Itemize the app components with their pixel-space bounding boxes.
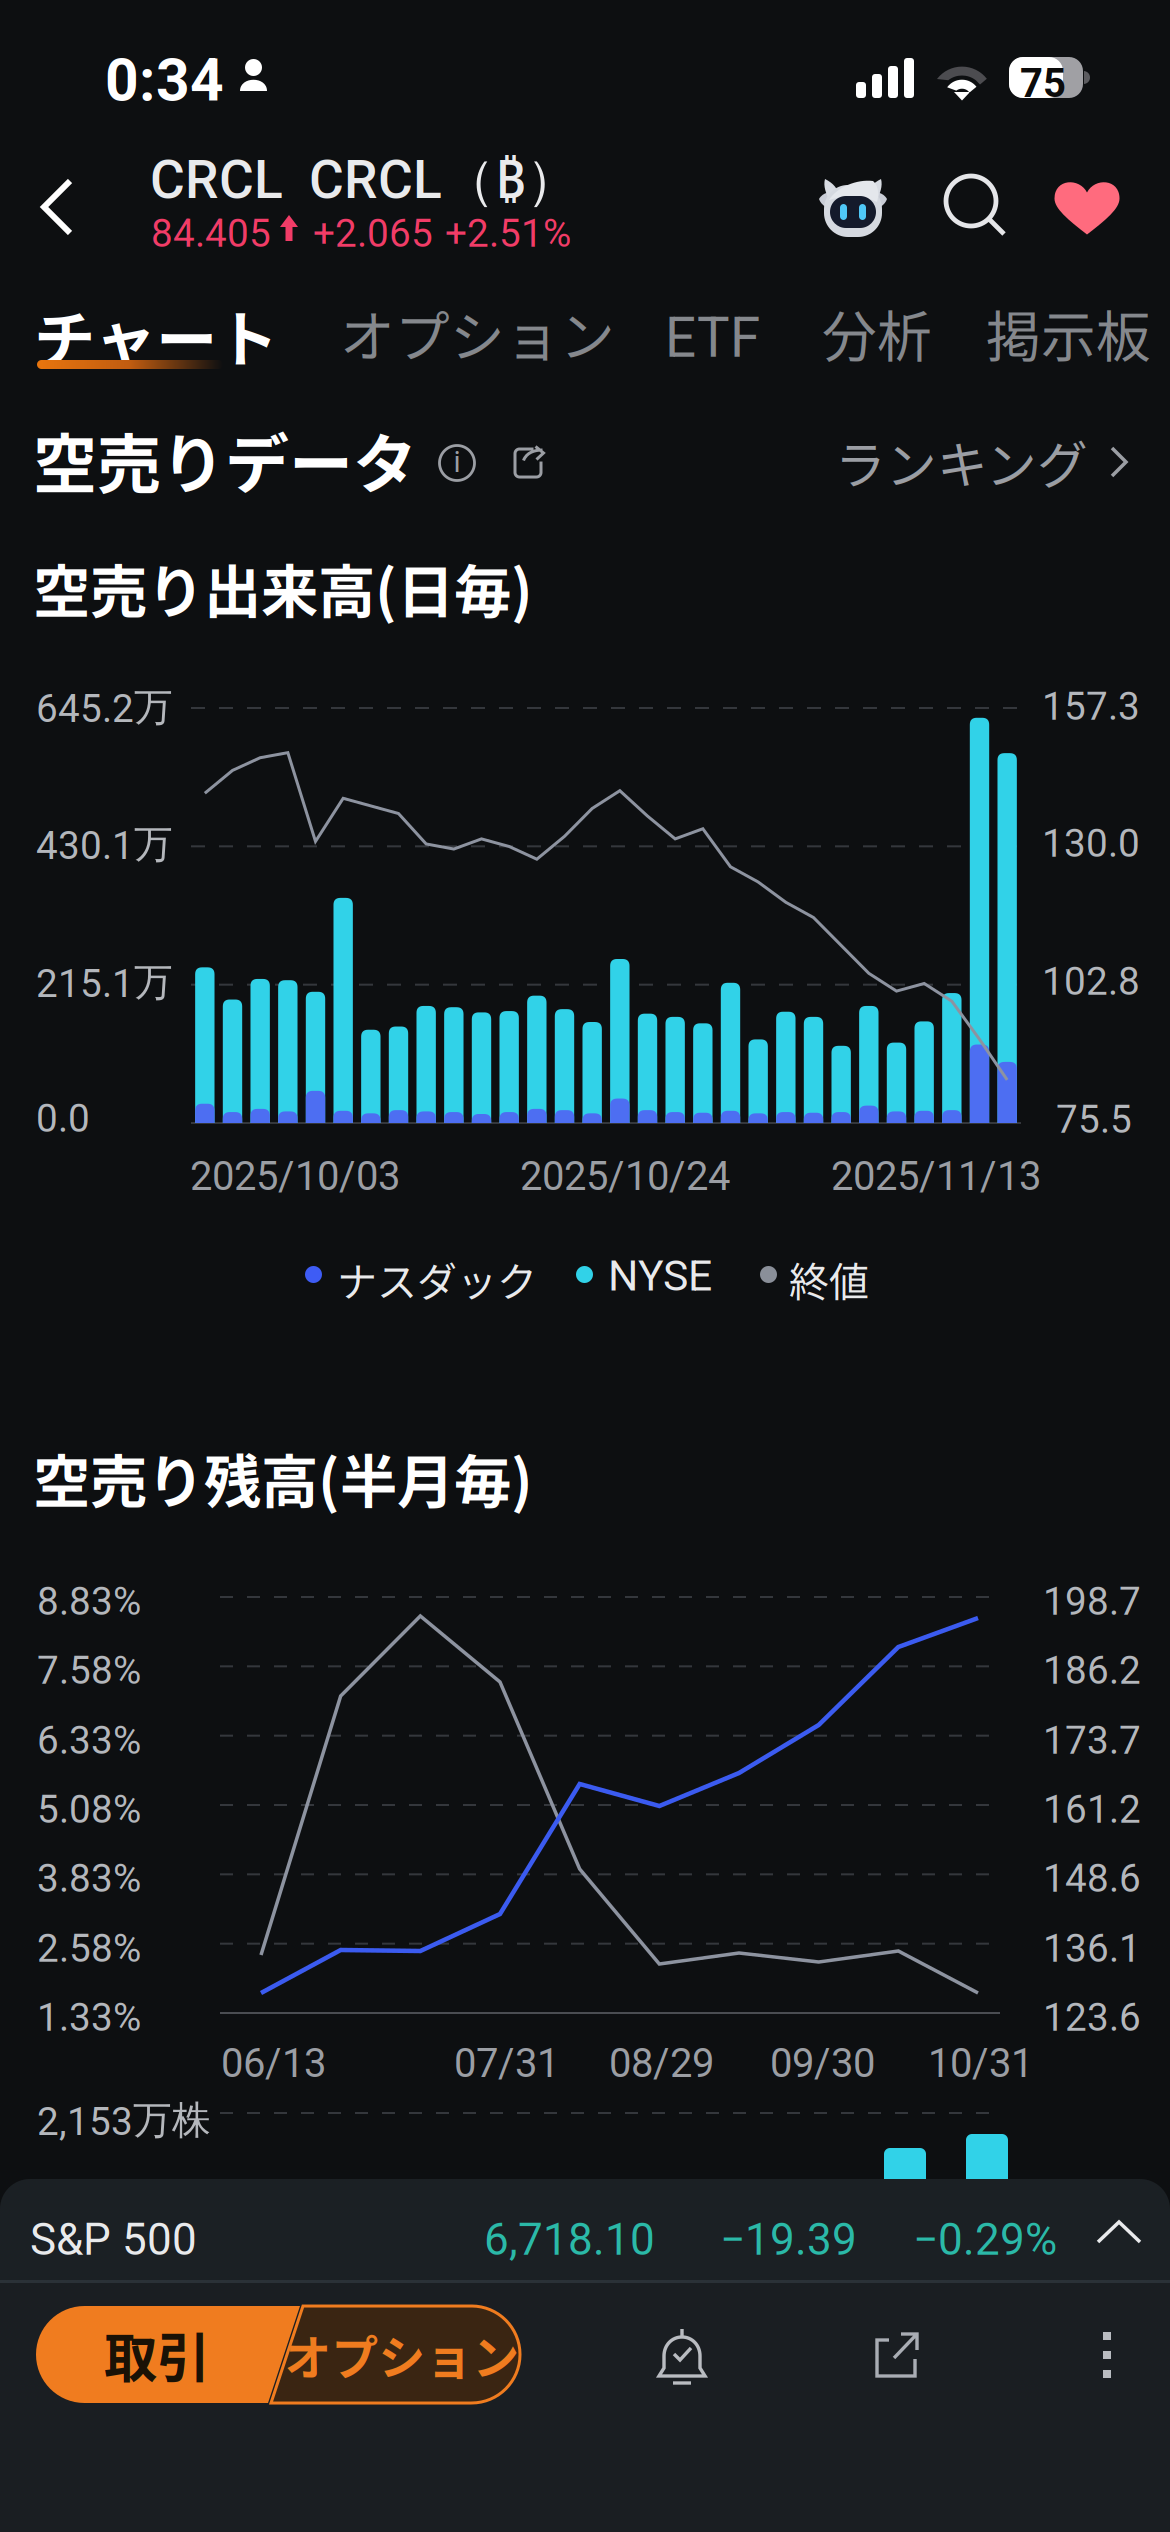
staticText: i (453, 445, 460, 479)
staticText: 2,153万株 (37, 2096, 211, 2145)
staticText: 75 (1020, 60, 1066, 107)
button[interactable]: Favorite (1039, 159, 1135, 255)
staticText: 取引 (104, 2316, 210, 2393)
staticText: +2.51% (445, 211, 571, 256)
staticText: 分析 (822, 293, 932, 372)
button[interactable]: Share (503, 437, 555, 489)
staticText: 10/31 (928, 2040, 1033, 2087)
button[interactable]: 掲示板 (972, 281, 1165, 384)
staticText: −19.39 (720, 2214, 857, 2266)
staticText: 8.83% (37, 1579, 141, 1624)
button[interactable]: Info (431, 437, 483, 489)
button[interactable]: AI assistant (801, 157, 905, 257)
staticText: 7.58% (37, 1648, 141, 1693)
staticText: 空売りデータ (33, 413, 417, 506)
staticText: 06/13 (221, 2040, 326, 2087)
staticText: 掲示板 (986, 293, 1151, 372)
staticText: 645.2万 (36, 683, 173, 732)
staticText: 終値 (789, 1250, 869, 1308)
staticText: チャート (34, 291, 278, 380)
staticText: ナスダック (337, 1250, 537, 1308)
staticText: 07/31 (454, 2040, 559, 2087)
button[interactable]: S&P 500 (0, 2182, 1170, 2282)
staticText: +2.065 (313, 211, 433, 256)
button[interactable]: チャート (20, 279, 292, 392)
button[interactable]: オプション (326, 281, 629, 384)
staticText: オプション (340, 293, 615, 372)
staticText: 136.1 (1043, 1926, 1141, 1971)
button[interactable]: More (1067, 2310, 1147, 2400)
staticText: 6,718.10 (484, 2214, 655, 2266)
staticText: 09/30 (770, 2040, 875, 2087)
button[interactable]: Search (928, 158, 1024, 254)
staticText: 161.2 (1043, 1787, 1141, 1832)
staticText: 173.7 (1043, 1718, 1141, 1763)
staticText: ETF (665, 306, 760, 370)
staticText: 148.6 (1043, 1856, 1141, 1901)
staticText: 2025/10/03 (190, 1153, 400, 1200)
staticText: 2025/11/13 (831, 1153, 1041, 1200)
staticText: 75.5 (1056, 1097, 1132, 1142)
button[interactable]: オプション (290, 2306, 514, 2403)
staticText: 1.33% (37, 1995, 141, 2040)
staticText: オプション (284, 2321, 519, 2388)
staticText: 0.0 (36, 1096, 90, 1141)
button[interactable]: Back (9, 157, 105, 257)
staticText: 198.7 (1043, 1579, 1141, 1624)
staticText: 2025/10/24 (520, 1153, 730, 1200)
button[interactable]: 分析 (808, 281, 946, 384)
staticText: NYSE (608, 1251, 712, 1301)
staticText: 5.08% (37, 1787, 141, 1832)
staticText: 130.0 (1042, 821, 1140, 866)
staticText: 186.2 (1043, 1648, 1141, 1693)
staticText: 123.6 (1043, 1995, 1141, 2040)
staticText: 2.58% (37, 1926, 141, 1971)
staticText: 08/29 (609, 2040, 714, 2087)
button[interactable]: ランキング (835, 431, 1128, 493)
button[interactable]: Share (849, 2306, 945, 2402)
staticText: 0:34 (105, 46, 224, 115)
button[interactable]: ETF (651, 294, 774, 382)
staticText: 空売り残高(半月毎) (33, 1436, 533, 1519)
staticText: S&P 500 (30, 2214, 197, 2266)
staticText: 430.1万 (36, 820, 173, 869)
staticText: 6.33% (37, 1718, 141, 1763)
staticText: 215.1万 (36, 958, 173, 1007)
staticText: −0.29% (913, 2214, 1057, 2266)
button[interactable]: 取引 (62, 2306, 252, 2403)
staticText: 空売り出来高(日毎) (33, 546, 533, 629)
staticText: 157.3 (1042, 684, 1140, 729)
staticText: 3.83% (37, 1856, 141, 1901)
staticText: 84.405 (151, 211, 271, 256)
staticText: ランキング (835, 425, 1088, 499)
staticText: CRCL CRCL（₿） (150, 141, 579, 214)
staticText: 102.8 (1042, 959, 1140, 1004)
button[interactable]: Alerts (634, 2308, 730, 2404)
